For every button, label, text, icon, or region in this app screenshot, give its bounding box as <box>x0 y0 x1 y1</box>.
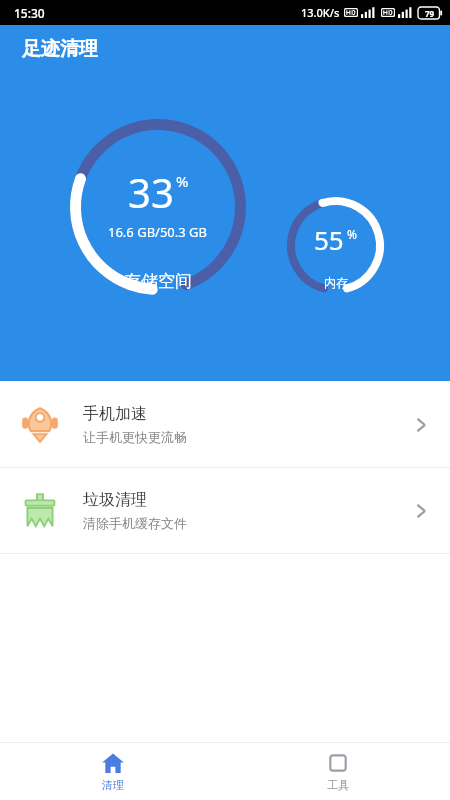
button[interactable]: 工具 <box>225 743 450 800</box>
staticText: 33 <box>128 165 174 219</box>
staticText: 79 <box>425 8 435 19</box>
staticText: 15:30 <box>14 5 45 21</box>
staticText: 16.6 GB/50.3 GB <box>108 223 208 241</box>
staticText: % <box>347 226 357 242</box>
button[interactable]: 清理 <box>0 743 225 800</box>
staticText: 清除手机缓存文件 <box>83 515 187 531</box>
button[interactable]: 手机加速 <box>0 382 450 467</box>
staticText: 存储空间 <box>70 271 246 292</box>
staticText: 清理 <box>102 778 124 792</box>
staticText: 工具 <box>327 778 349 792</box>
staticText: 足迹清理 <box>22 37 98 61</box>
staticText: 让手机更快更流畅 <box>83 429 187 445</box>
staticText: % <box>176 171 189 191</box>
staticText: 手机加速 <box>83 404 147 424</box>
staticText: 13.0K/s <box>301 5 340 20</box>
staticText: 55 <box>314 222 344 257</box>
button[interactable]: 垃圾清理 <box>0 468 450 553</box>
staticText: 垃圾清理 <box>83 490 147 510</box>
staticText: 内存 <box>324 275 348 290</box>
